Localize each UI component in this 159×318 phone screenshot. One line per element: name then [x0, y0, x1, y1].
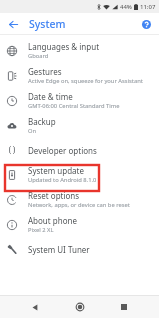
button[interactable]: Backup — [0, 113, 159, 138]
staticText: Active Edge on, squeeze for your Assista… — [28, 77, 143, 85]
button[interactable]: System update — [0, 162, 159, 187]
staticText: Languages & input — [28, 41, 100, 52]
button[interactable]: About phone — [0, 212, 159, 237]
button[interactable]: Back — [26, 298, 44, 316]
staticText: Pixel 2 XL — [28, 226, 54, 234]
button[interactable]: Home — [71, 298, 89, 316]
staticText: Developer options — [28, 145, 97, 156]
staticText: Backup — [28, 116, 56, 127]
button[interactable]: Gestures — [0, 63, 159, 88]
staticText: 11:07 — [140, 3, 156, 11]
staticText: Reset options — [28, 190, 80, 201]
staticText: System update — [28, 165, 84, 176]
button[interactable]: Developer options — [0, 138, 159, 162]
staticText: GMT-06:00 Central Standard Time — [28, 102, 120, 110]
staticText: Updated to Android 8.1.0 — [28, 176, 97, 184]
button[interactable]: Reset options — [0, 187, 159, 212]
button[interactable]: System UI Tuner — [0, 237, 159, 261]
staticText: Date & time — [28, 91, 73, 102]
button[interactable]: Back — [5, 16, 21, 32]
staticText: Gboard — [28, 52, 49, 60]
staticText: System — [29, 17, 66, 31]
staticText: Gestures — [28, 66, 62, 77]
button[interactable]: Date & time — [0, 88, 159, 113]
button[interactable]: Recents — [115, 298, 133, 316]
staticText: About phone — [28, 215, 77, 226]
staticText: On — [28, 127, 37, 135]
staticText: Network, apps, or device can be reset — [28, 201, 130, 209]
staticText: 44% — [120, 3, 132, 11]
button[interactable]: Help — [138, 16, 154, 32]
staticText: System UI Tuner — [28, 244, 90, 255]
button[interactable]: Languages & input — [0, 38, 159, 63]
